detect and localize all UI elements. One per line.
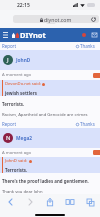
staticText: DevonDo.net said:: [5, 81, 41, 87]
button[interactable]: Thanks: [76, 121, 95, 127]
button[interactable]: Tabs: [80, 194, 100, 210]
staticText: 22:15: [17, 2, 30, 9]
staticText: Terrorists.: [5, 167, 28, 173]
button[interactable]: J: [3, 55, 31, 65]
button[interactable]: Bookmarks: [60, 194, 80, 210]
button[interactable]: N: [3, 133, 33, 143]
staticText: DIYnot: [20, 30, 46, 40]
button[interactable]: Report: [2, 43, 16, 49]
button[interactable]: Thanks: [76, 43, 95, 49]
button[interactable]: Tab overview: [46, 15, 56, 24]
staticText: Thank you dear John: [2, 189, 43, 193]
staticText: diynot.com: [44, 16, 72, 23]
staticText: Thanks: [80, 121, 95, 127]
button[interactable]: Reload: [91, 17, 96, 22]
staticText: N: [6, 134, 11, 142]
staticText: A moment ago: [2, 150, 32, 156]
staticText: There's the proof ladies and gentlemen.: [2, 178, 89, 184]
button[interactable]: Post number: [93, 73, 100, 78]
staticText: jewish settlers: [5, 90, 37, 96]
button[interactable]: Menu: [3, 32, 8, 38]
button[interactable]: Share: [40, 194, 60, 210]
button[interactable]: Forward: [20, 194, 40, 210]
button[interactable]: Back: [0, 194, 20, 210]
button[interactable]: Inbox: [92, 33, 97, 37]
staticText: Terrorists.: [2, 101, 25, 107]
staticText: Racism, Apartheid and Genocide are crime…: [2, 112, 100, 118]
button[interactable]: Report: [2, 121, 16, 127]
staticText: A moment ago: [2, 72, 32, 78]
staticText: Mega2: [16, 135, 33, 142]
button[interactable]: diynot.com: [13, 15, 99, 23]
button[interactable]: Post number: [93, 150, 100, 155]
staticText: Thanks: [80, 43, 95, 49]
staticText: J: [7, 56, 9, 64]
staticText: JohnD: [16, 57, 31, 64]
staticText: JohnD said:: [5, 158, 28, 164]
button[interactable]: Alerts: [82, 33, 86, 37]
